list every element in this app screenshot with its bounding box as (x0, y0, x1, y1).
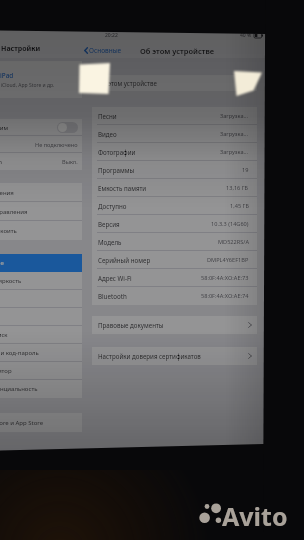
staticText: 20:22 (105, 32, 118, 39)
button[interactable]: Конфиденциальность (0, 380, 82, 398)
staticText: Пункт управления (0, 208, 28, 216)
staticText: 40 % (240, 32, 252, 39)
staticText: Фотографии (98, 148, 136, 156)
button[interactable]: Звуки (0, 308, 82, 326)
staticText: Не подключено (35, 141, 78, 149)
button[interactable]: iTunes Store и App Store (0, 413, 82, 432)
staticText: 1,45 ГБ (230, 202, 249, 210)
button[interactable]: Обои (0, 290, 82, 308)
button[interactable]: Об этом устройстве (92, 75, 257, 91)
staticText: DMPL4Y6EF1BP (207, 256, 249, 264)
staticText: iTunes Store и App Store (0, 419, 44, 427)
staticText: Видео (98, 130, 117, 138)
staticText: Bluetooth (0, 158, 2, 166)
staticText: Конфиденциальность (0, 385, 38, 393)
staticText: Об этом устройстве (140, 46, 215, 56)
staticText: Bluetooth (98, 292, 127, 300)
staticText: 58:0F:4A:XO:AE:74 (201, 292, 249, 300)
button[interactable]: Основные (84, 46, 122, 55)
button[interactable]: Авиарежим (0, 119, 82, 136)
staticText: Touch ID и код-пароль (0, 349, 39, 357)
staticText: Программы (98, 166, 135, 174)
button[interactable]: Bluetooth (0, 153, 82, 170)
staticText: Выкл. (62, 158, 78, 166)
staticText: Доступно (98, 202, 127, 210)
staticText: Настройки (1, 44, 41, 54)
staticText: Настройки доверия сертификатов (98, 352, 201, 360)
staticText: Емкость памяти (98, 184, 147, 192)
button[interactable]: Touch ID и код-пароль (0, 344, 82, 362)
button[interactable]: Емкость памяти (92, 179, 257, 197)
staticText: Avito (222, 499, 288, 533)
staticText: Экран и яркость (0, 277, 22, 285)
staticText: 10.3.3 (14G60) (211, 220, 249, 228)
staticText: Уведомления (0, 189, 14, 197)
button[interactable]: Правовые документы (92, 316, 257, 334)
other: Avito watermark (0, 0, 304, 540)
staticText: MD522RS/A (218, 238, 249, 246)
button[interactable]: Не беспокоить (0, 221, 82, 240)
button[interactable]: Экран и яркость (0, 272, 82, 290)
staticText: 13,16 ГБ (226, 184, 249, 192)
staticText: Загрузка... (220, 112, 249, 120)
staticText: Правовые документы (98, 321, 164, 329)
staticText: Основные (0, 259, 4, 267)
button[interactable]: Основные (0, 254, 82, 272)
staticText: Вход на iPad (0, 71, 14, 80)
button[interactable]: Видео (92, 125, 257, 143)
staticText: Модель (98, 238, 122, 246)
staticText: Основные (89, 46, 122, 55)
button[interactable]: Вход на iPad (0, 61, 82, 98)
button[interactable]: Серийный номер (92, 251, 257, 269)
button[interactable]: Версия (92, 215, 257, 233)
button[interactable]: Песни (92, 107, 257, 125)
staticText: 58:0F:4A:XO:AE:73 (201, 274, 249, 282)
button[interactable]: Аккумулятор (0, 362, 82, 380)
staticText: Загрузка... (220, 148, 249, 156)
button[interactable]: Настройки доверия сертификатов (92, 347, 257, 365)
button[interactable]: Доступно (92, 197, 257, 215)
staticText: Песни (98, 112, 117, 120)
staticText: 19 (242, 166, 249, 174)
button[interactable]: Siri и Поиск (0, 326, 82, 344)
staticText: Версия (98, 220, 120, 228)
button[interactable]: Фотографии (92, 143, 257, 161)
staticText: Siri и Поиск (0, 331, 8, 339)
button[interactable]: Bluetooth (92, 287, 257, 305)
staticText: Загрузка... (220, 130, 249, 138)
staticText: Настройте iCloud, App Store и др. (0, 82, 55, 89)
button[interactable]: Программы (92, 161, 257, 179)
button[interactable]: Wi-Fi (0, 136, 82, 153)
button[interactable]: Пункт управления (0, 202, 82, 221)
staticText: Серийный номер (98, 256, 151, 264)
staticText: Адрес Wi-Fi (98, 274, 132, 282)
button[interactable]: Уведомления (0, 183, 82, 202)
staticText: Авиарежим (0, 124, 8, 132)
button[interactable]: Адрес Wi-Fi (92, 269, 257, 287)
staticText: Не беспокоить (0, 227, 17, 235)
staticText: Об этом устройстве (98, 79, 157, 87)
button[interactable]: Модель (92, 233, 257, 251)
staticText: Аккумулятор (0, 367, 12, 375)
